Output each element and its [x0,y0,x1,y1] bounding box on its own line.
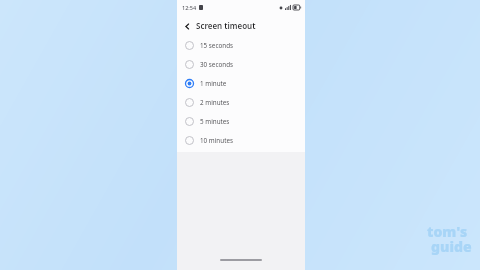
staticText: guide [431,237,472,256]
staticText: tom's [427,222,468,241]
staticText: 2 minutes [200,98,230,107]
button[interactable]: 15 seconds [177,36,305,55]
staticText: 5 minutes [200,117,230,126]
staticText: Screen timeout [196,20,256,31]
staticText: 15 seconds [200,41,234,50]
button[interactable]: 2 minutes [177,93,305,112]
staticText: 1 minute [200,79,227,88]
button[interactable]: 1 minute [177,74,305,93]
button[interactable]: Navigate back [179,18,195,34]
staticText: 10 minutes [200,136,233,145]
staticText: 30 seconds [200,60,234,69]
button[interactable]: 30 seconds [177,55,305,74]
button[interactable]: Tom's Guide [427,222,468,260]
button[interactable]: 5 minutes [177,112,305,131]
button[interactable]: 10 minutes [177,131,305,150]
staticText: 12:54 [182,4,197,11]
